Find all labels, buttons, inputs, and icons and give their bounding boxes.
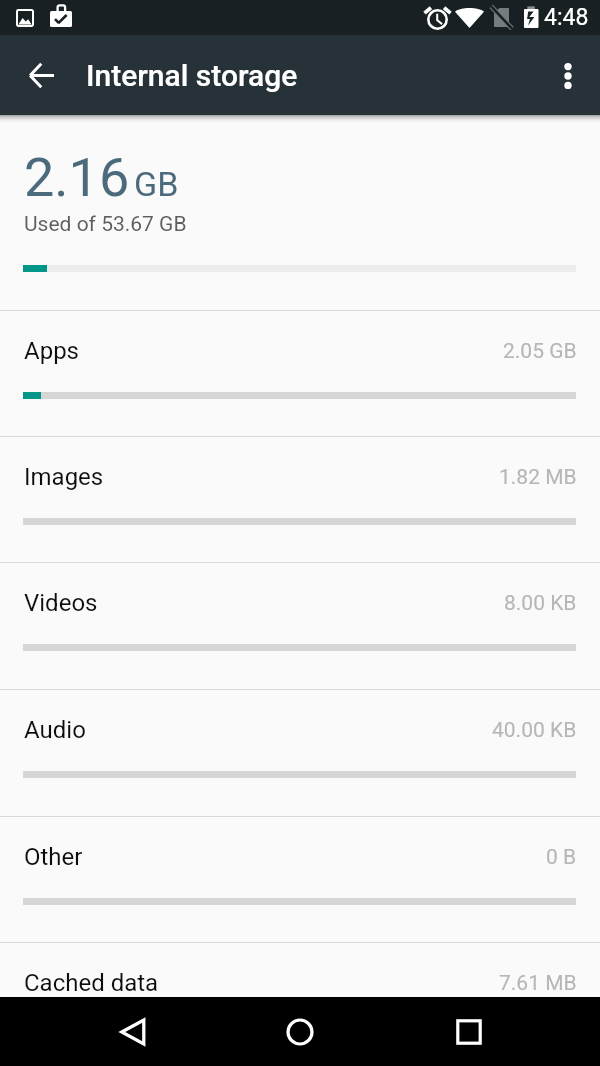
- button[interactable]: Audio: [0, 690, 600, 816]
- button[interactable]: Cached data: [0, 943, 600, 1066]
- staticText: GB: [134, 164, 179, 204]
- button[interactable]: Other: [0, 817, 600, 943]
- button[interactable]: Back: [89, 997, 177, 1066]
- staticText: Audio: [24, 716, 86, 744]
- button[interactable]: Home: [256, 997, 344, 1066]
- staticText: 7.61 MB: [499, 971, 577, 996]
- button[interactable]: Recents: [425, 997, 513, 1066]
- button[interactable]: Back: [0, 35, 86, 115]
- staticText: Other: [24, 843, 83, 871]
- staticText: 1.82 MB: [499, 465, 577, 490]
- staticText: 4:48: [544, 4, 589, 31]
- staticText: Cached data: [24, 969, 159, 997]
- staticText: 2.16: [24, 146, 130, 209]
- staticText: 40.00 KB: [492, 718, 577, 743]
- staticText: 0 B: [546, 845, 577, 870]
- staticText: Videos: [24, 589, 98, 617]
- staticText: Used of 53.67 GB: [24, 212, 187, 237]
- button[interactable]: More options: [544, 47, 600, 103]
- button[interactable]: Images: [0, 437, 600, 563]
- staticText: Images: [24, 463, 104, 491]
- button[interactable]: Apps: [0, 311, 600, 437]
- button[interactable]: Videos: [0, 563, 600, 689]
- staticText: Apps: [24, 337, 79, 365]
- staticText: 2.05 GB: [503, 339, 577, 364]
- button[interactable]: 2.16: [0, 115, 600, 310]
- staticText: Internal storage: [86, 58, 298, 93]
- staticText: 8.00 KB: [504, 591, 577, 616]
